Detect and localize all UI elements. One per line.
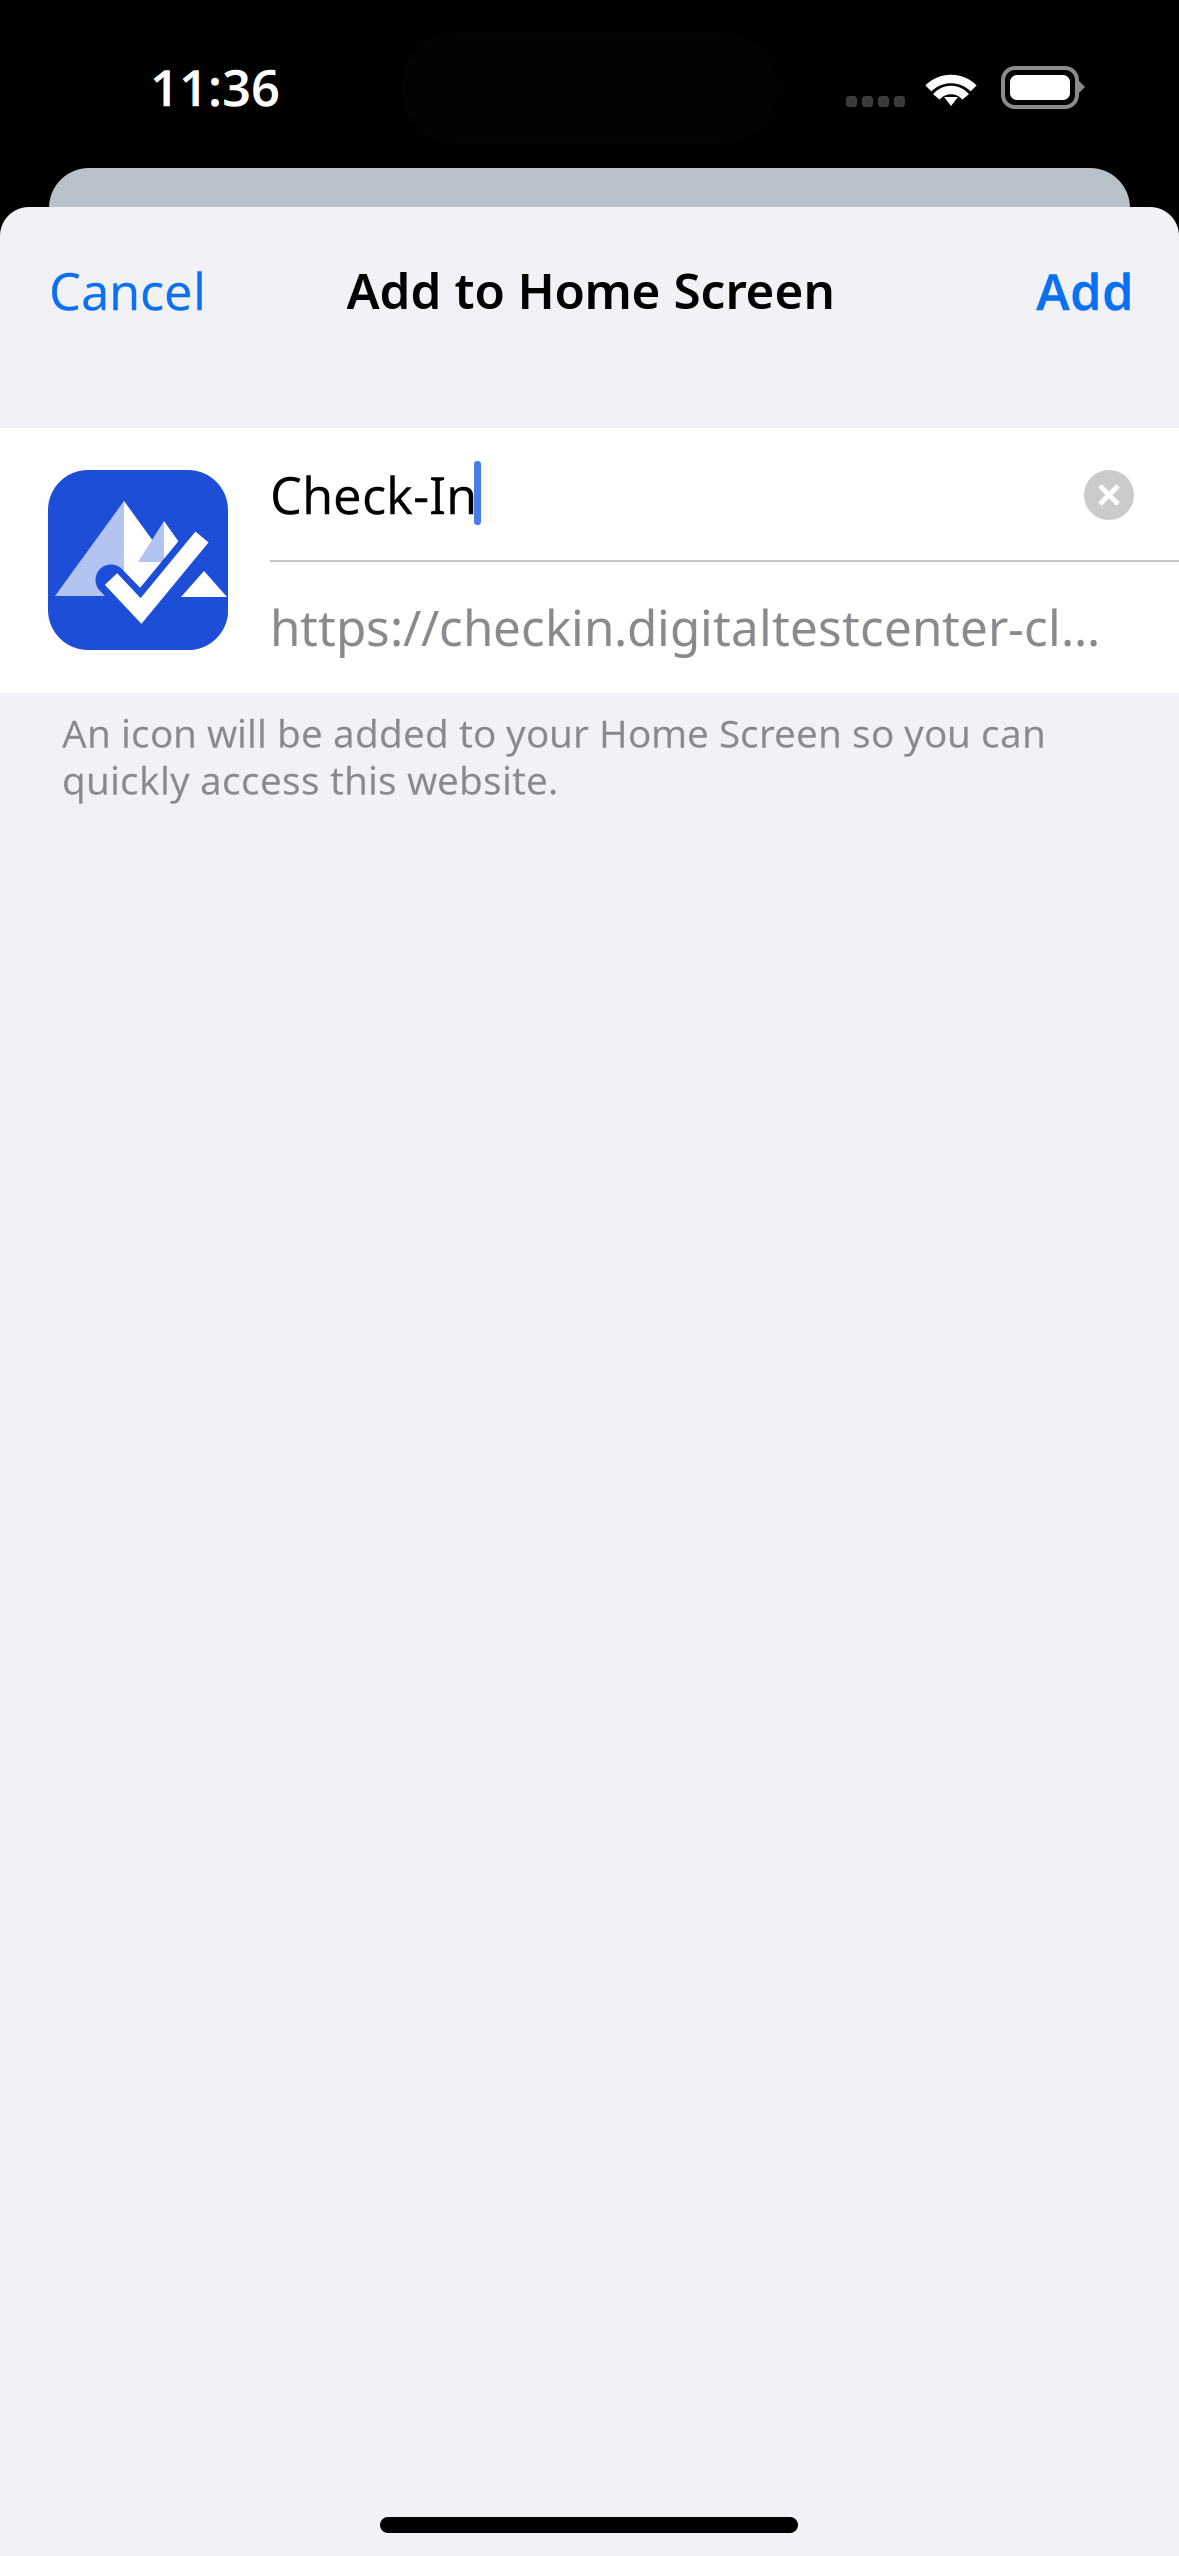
- staticText: Add to Home Screen: [346, 257, 834, 322]
- staticText: https://checkin.digitaltestcenter-cl...: [270, 594, 1100, 659]
- staticText: An icon will be added to your Home Scree…: [62, 707, 1046, 758]
- staticText: Check-In: [270, 461, 477, 528]
- staticText: Cancel: [49, 257, 206, 324]
- button[interactable]: Add: [1034, 257, 1134, 324]
- button[interactable]: Clear text: [1084, 470, 1134, 520]
- staticText: Add: [1036, 257, 1134, 324]
- staticText: 11:36: [150, 53, 280, 120]
- staticText: quickly access this website.: [62, 754, 558, 805]
- button[interactable]: Cancel: [49, 257, 206, 324]
